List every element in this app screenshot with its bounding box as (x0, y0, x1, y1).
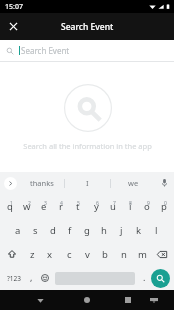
staticText: b (102, 248, 108, 261)
button[interactable]: I (65, 172, 110, 194)
button[interactable]: j (114, 219, 128, 241)
staticText: z (30, 248, 35, 261)
staticText: 9 (147, 200, 150, 207)
button[interactable]: t (71, 195, 85, 217)
button[interactable]: m (135, 243, 149, 265)
button[interactable]: i (123, 195, 137, 217)
button[interactable]: a (11, 219, 25, 241)
staticText: c (67, 248, 72, 261)
staticText: Search all the information in the app (23, 141, 152, 151)
button[interactable]: e (37, 195, 51, 217)
staticText: thanks (30, 178, 54, 188)
staticText: y (94, 200, 99, 213)
button[interactable]: h (97, 219, 111, 241)
button[interactable]: Close (3, 16, 24, 37)
staticText: r (59, 200, 63, 213)
staticText: a (15, 224, 21, 237)
button[interactable]: r (54, 195, 68, 217)
staticText: k (136, 224, 142, 237)
staticText: h (101, 224, 107, 237)
button[interactable]: x (43, 243, 57, 265)
staticText: e (41, 200, 47, 213)
staticText: l (155, 224, 158, 237)
staticText: d (50, 224, 56, 237)
staticText: t (76, 200, 80, 213)
staticText: Search Event (21, 45, 70, 56)
button[interactable]: Home (79, 292, 95, 308)
button[interactable]: q (3, 195, 17, 217)
button[interactable]: More suggestions (4, 177, 17, 190)
button[interactable]: thanks (20, 172, 64, 194)
staticText: x (47, 248, 53, 261)
button[interactable]: Backspace (154, 246, 170, 262)
button[interactable]: . (138, 267, 151, 289)
staticText: j (120, 224, 123, 237)
button[interactable]: l (149, 219, 163, 241)
staticText: q (7, 200, 13, 213)
staticText: we (128, 178, 139, 188)
staticText: m (138, 248, 147, 261)
button[interactable]: f (63, 219, 77, 241)
button[interactable]: k (132, 219, 146, 241)
staticText: 3 (44, 200, 47, 207)
staticText: 2 (28, 200, 31, 207)
button[interactable]: u (106, 195, 120, 217)
staticText: 0 (164, 200, 167, 207)
staticText: 1 (10, 200, 13, 207)
button[interactable]: v (80, 243, 94, 265)
staticText: 15:07 (5, 2, 23, 12)
button[interactable]: Search (151, 269, 170, 288)
button[interactable]: Hide keyboard (146, 292, 162, 308)
button[interactable]: Voice input (157, 176, 171, 190)
staticText: v (85, 248, 90, 261)
button[interactable]: n (117, 243, 131, 265)
staticText: s (33, 224, 38, 237)
button[interactable]: d (46, 219, 60, 241)
button[interactable]: s (28, 219, 42, 241)
staticText: ?123 (7, 274, 21, 283)
button[interactable]: z (25, 243, 39, 265)
staticText: g (84, 224, 90, 237)
staticText: 5 (77, 200, 80, 207)
staticText: , (30, 271, 33, 283)
staticText: i (129, 200, 132, 213)
staticText: o (144, 200, 150, 213)
button[interactable]: p (157, 195, 171, 217)
button[interactable]: y (89, 195, 103, 217)
button[interactable]: Recents (120, 292, 136, 308)
button[interactable]: o (140, 195, 154, 217)
button[interactable]: Shift (4, 246, 20, 262)
staticText: 8 (129, 200, 132, 207)
staticText: n (121, 248, 127, 261)
button[interactable]: we (111, 172, 156, 194)
staticText: 6 (96, 200, 99, 207)
staticText: w (23, 200, 31, 213)
staticText: p (161, 200, 167, 213)
staticText: I (86, 178, 89, 188)
button[interactable]: , (25, 267, 38, 289)
button[interactable]: Emoji (38, 267, 52, 289)
staticText: . (143, 271, 146, 283)
staticText: u (110, 200, 116, 213)
button[interactable]: w (20, 195, 34, 217)
button[interactable]: b (98, 243, 112, 265)
staticText: f (68, 224, 72, 237)
staticText: Search Event (61, 21, 114, 33)
button[interactable]: c (62, 243, 76, 265)
button[interactable]: Search Event (0, 40, 174, 61)
staticText: 4 (60, 200, 63, 207)
button[interactable]: g (80, 219, 94, 241)
button[interactable]: Back (32, 292, 48, 308)
staticText: 7 (113, 200, 116, 207)
button[interactable]: ?123 (3, 267, 25, 289)
